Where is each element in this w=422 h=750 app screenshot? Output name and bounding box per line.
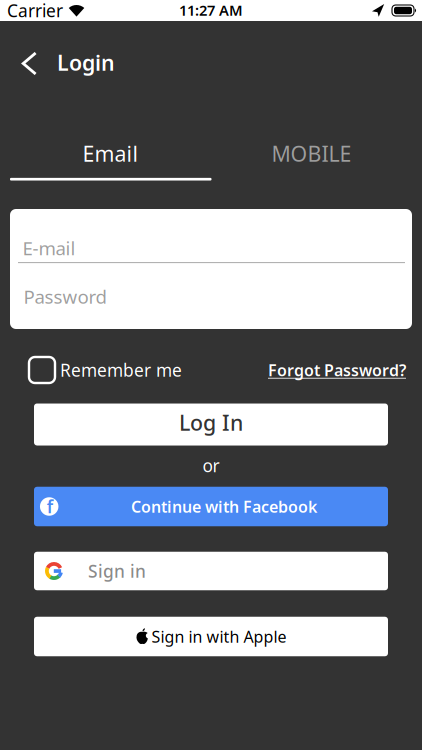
staticText: E-mail [22, 236, 75, 260]
button[interactable]: Log In [34, 403, 388, 445]
button[interactable]: E-mail [10, 209, 412, 262]
staticText: Continue with Facebook [131, 496, 317, 517]
staticText: Carrier [7, 0, 63, 22]
staticText: Email [82, 139, 138, 168]
staticText: f [47, 495, 53, 518]
button[interactable]: Continue with Facebook [34, 487, 388, 526]
staticText: 11:27 AM [179, 0, 243, 20]
staticText: MOBILE [271, 139, 351, 168]
button[interactable]: Email [10, 129, 211, 177]
button[interactable] [12, 43, 46, 83]
button[interactable]: Remember me [29, 357, 182, 383]
staticText: Password [23, 284, 106, 309]
staticText: Forgot Password? [268, 359, 406, 381]
button[interactable]: Forgot Password? [268, 359, 406, 381]
button[interactable]: Sign in with Apple [34, 617, 388, 656]
staticText: Log In [179, 408, 243, 437]
staticText: or [202, 454, 219, 477]
staticText: Login [57, 48, 115, 77]
button[interactable]: Password [10, 263, 412, 329]
staticText: Remember me [60, 358, 182, 381]
staticText: Sign in [88, 559, 146, 582]
staticText: Sign in with Apple [151, 626, 286, 647]
button[interactable]: Sign in [34, 552, 388, 590]
button[interactable]: MOBILE [211, 129, 412, 177]
